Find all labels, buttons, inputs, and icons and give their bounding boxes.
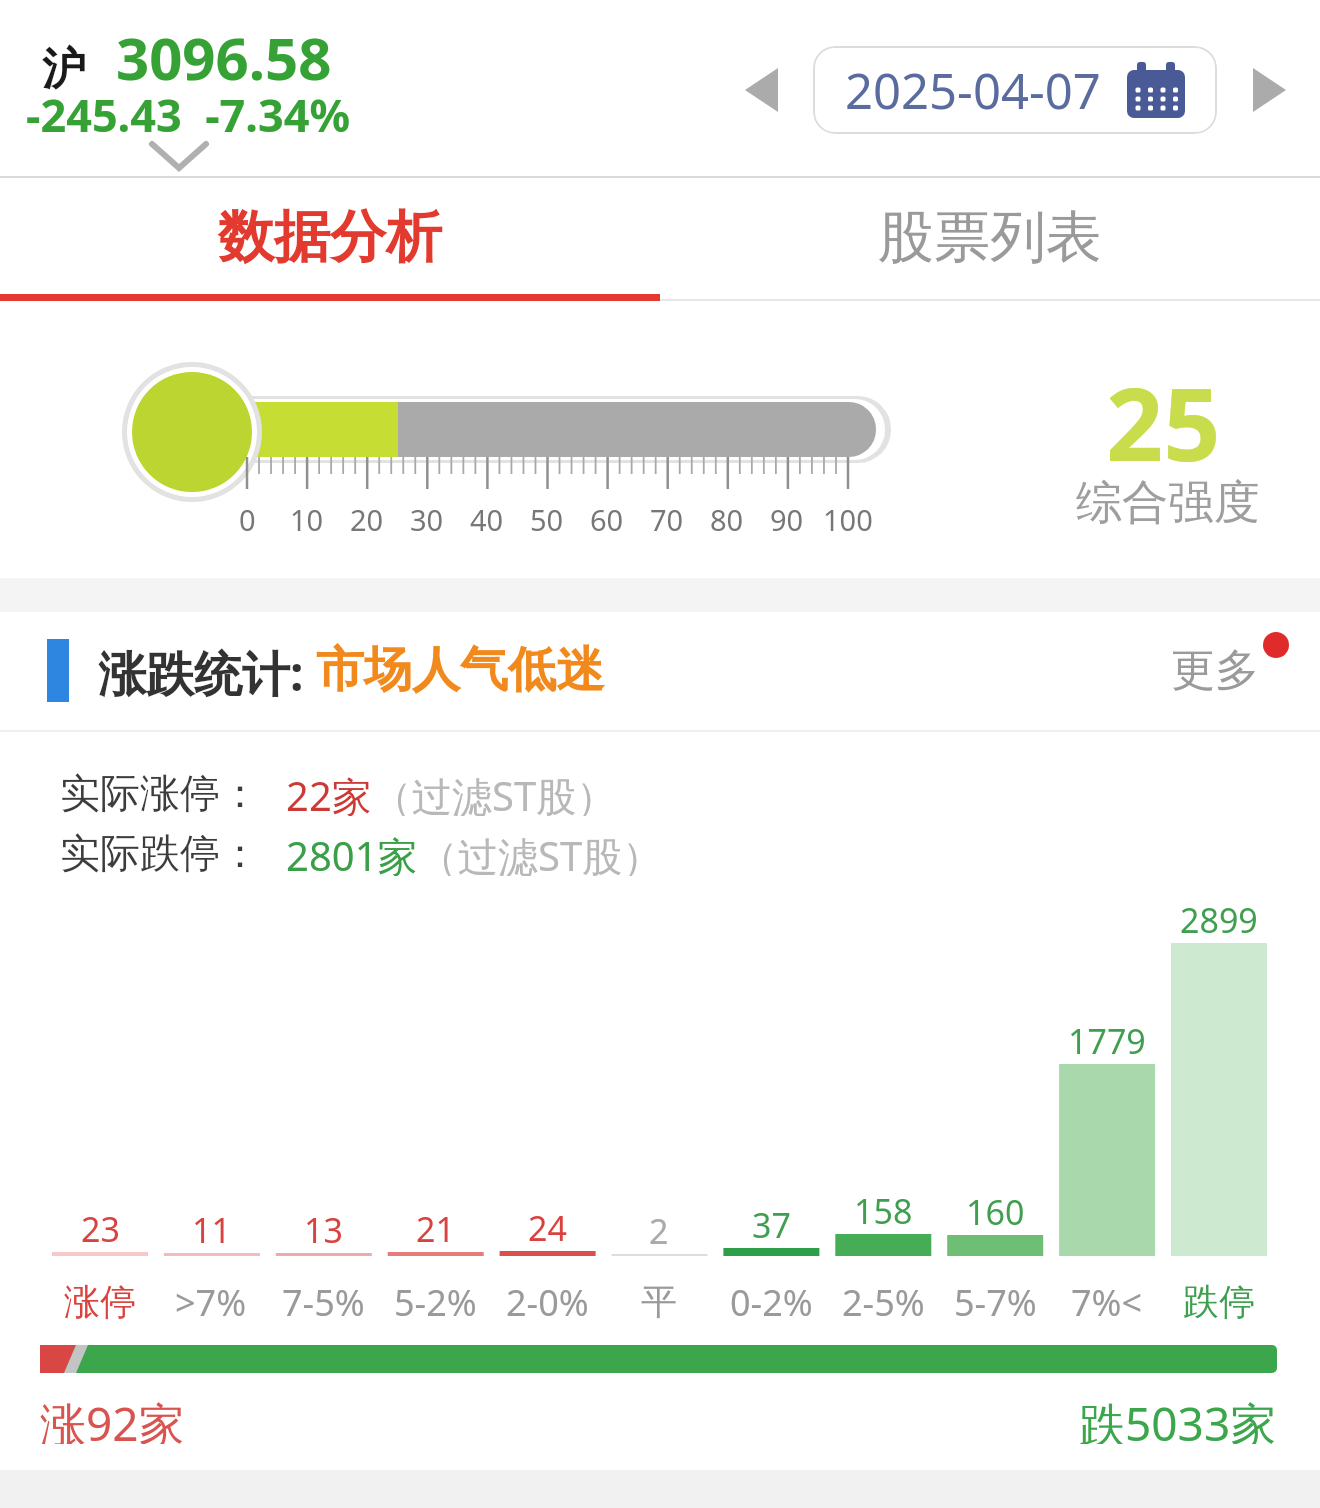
staticText: 22家: [286, 768, 372, 816]
staticText: 沪: [42, 42, 86, 97]
staticText: （过滤ST股）: [372, 768, 617, 816]
staticText: 80: [710, 500, 744, 536]
staticText: 0-2%: [730, 1278, 813, 1324]
staticText: 40: [470, 500, 504, 536]
staticText: 158: [854, 1188, 913, 1228]
staticText: 跌停: [1183, 1279, 1255, 1324]
staticText: 23: [81, 1206, 120, 1246]
staticText: 涨停: [64, 1279, 136, 1324]
staticText: 11: [192, 1207, 231, 1247]
staticText: 24: [528, 1205, 567, 1245]
staticText: 60: [590, 500, 624, 536]
button[interactable]: [745, 68, 778, 112]
staticText: 2-0%: [506, 1278, 589, 1324]
staticText: 10: [290, 500, 324, 536]
staticText: 2: [649, 1208, 669, 1248]
staticText: 2-5%: [842, 1278, 925, 1324]
button[interactable]: 更多: [1160, 640, 1270, 700]
staticText: 5-2%: [394, 1278, 477, 1324]
staticText: 实际跌停：: [60, 828, 260, 876]
staticText: 涨92家: [40, 1392, 185, 1444]
staticText: >7%: [175, 1278, 247, 1324]
staticText: 1779: [1068, 1018, 1146, 1058]
staticText: 100: [823, 500, 873, 536]
staticText: 市场人气低迷: [316, 640, 604, 700]
staticText: 更多: [1171, 643, 1259, 698]
staticText: 13: [304, 1207, 343, 1247]
button[interactable]: 2025-04-07: [813, 46, 1217, 134]
staticText: 2801家: [286, 828, 418, 876]
staticText: 30: [410, 500, 444, 536]
staticText: 21: [416, 1206, 455, 1246]
staticText: 5-7%: [954, 1278, 1037, 1324]
staticText: -245.43 -7.34%: [26, 84, 351, 134]
staticText: 平: [641, 1279, 677, 1324]
button[interactable]: 数据分析: [0, 178, 660, 296]
staticText: 50: [530, 500, 564, 536]
staticText: 20: [350, 500, 384, 536]
staticText: 股票列表: [878, 202, 1102, 273]
staticText: 2025-04-07: [845, 57, 1101, 124]
staticText: 3096.58: [116, 18, 332, 97]
staticText: 90: [770, 500, 804, 536]
staticText: 7%<: [1071, 1278, 1143, 1324]
staticText: 160: [966, 1189, 1025, 1229]
staticText: 25: [1106, 354, 1221, 470]
staticText: 70: [650, 500, 684, 536]
staticText: 数据分析: [218, 202, 442, 273]
staticText: 涨跌统计:: [98, 640, 316, 700]
staticText: 37: [752, 1202, 791, 1242]
button[interactable]: 股票列表: [660, 178, 1320, 296]
staticText: 0: [239, 500, 256, 536]
staticText: 综合强度: [1076, 474, 1260, 528]
staticText: 7-5%: [282, 1278, 365, 1324]
staticText: 实际涨停：: [60, 768, 260, 816]
button[interactable]: [1253, 68, 1286, 112]
staticText: （过滤ST股）: [418, 828, 663, 876]
button[interactable]: [150, 140, 208, 174]
staticText: 跌5033家: [1079, 1392, 1277, 1444]
staticText: 2899: [1180, 897, 1258, 937]
